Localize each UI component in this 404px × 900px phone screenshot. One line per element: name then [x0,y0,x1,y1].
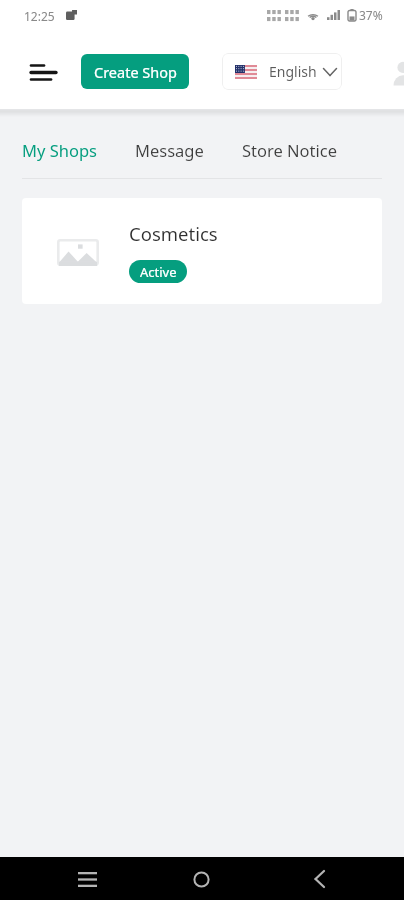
button[interactable]: Profile [386,56,404,90]
button[interactable]: Home [181,859,221,899]
button[interactable]: Active [129,260,187,283]
button[interactable]: Cosmetics [22,198,382,304]
staticText: Message [135,139,204,161]
button[interactable]: Store Notice [242,139,338,161]
button[interactable]: My Shops [22,139,97,161]
button[interactable]: Recents [67,859,107,899]
button[interactable]: English [222,53,342,90]
staticText: Store Notice [242,139,338,161]
staticText: English [269,62,317,81]
staticText: My Shops [22,139,97,161]
staticText: Cosmetics [129,221,218,246]
staticText: 12:25 [24,8,55,24]
staticText: Create Shop [94,62,177,82]
button[interactable]: Menu [14,52,73,92]
button[interactable]: Back [299,859,339,899]
button[interactable]: Create Shop [81,54,189,89]
button[interactable]: Message [135,139,204,161]
staticText: 37% [359,7,383,23]
staticText: Active [140,263,177,281]
